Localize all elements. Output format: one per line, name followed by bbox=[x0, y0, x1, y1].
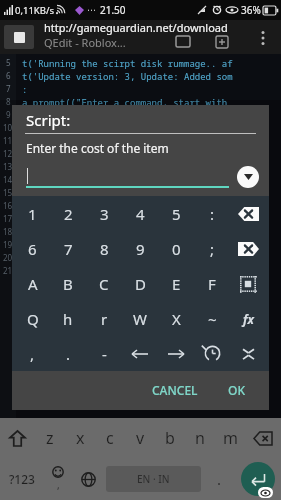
staticText: EN · IN bbox=[137, 472, 170, 486]
button[interactable]: fx bbox=[230, 301, 266, 336]
button[interactable]: 8 bbox=[86, 231, 122, 266]
staticText: 20 bbox=[3, 252, 13, 263]
button[interactable]: D bbox=[122, 266, 158, 301]
button[interactable]: 3 bbox=[86, 196, 122, 231]
button[interactable]: ; bbox=[194, 231, 230, 266]
button[interactable]: 0 bbox=[158, 231, 194, 266]
staticText: 21 bbox=[3, 265, 13, 276]
button[interactable]: 5 bbox=[158, 196, 194, 231]
staticText: C bbox=[99, 274, 109, 294]
staticText: W bbox=[133, 309, 147, 329]
button[interactable]: Change language bbox=[73, 458, 103, 500]
staticText: F bbox=[208, 274, 216, 294]
staticText: 2 bbox=[64, 204, 73, 224]
button[interactable]: New tab bbox=[212, 32, 232, 52]
staticText: z bbox=[46, 427, 54, 449]
button[interactable]: 2 bbox=[50, 196, 86, 231]
button[interactable]: C bbox=[86, 266, 122, 301]
button[interactable]: bs1 bbox=[230, 196, 266, 231]
staticText: , bbox=[57, 478, 60, 492]
button[interactable]: hist bbox=[194, 336, 230, 371]
button[interactable]: h bbox=[50, 301, 86, 336]
staticText: A bbox=[28, 274, 38, 294]
staticText: B bbox=[63, 274, 73, 294]
button[interactable]: m bbox=[215, 418, 245, 458]
button[interactable]: 4 bbox=[122, 196, 158, 231]
staticText: , bbox=[30, 344, 35, 364]
staticText: t('Update version: 3, Update: Added som bbox=[22, 70, 233, 82]
staticText: n bbox=[195, 427, 205, 449]
staticText: : bbox=[210, 204, 215, 224]
button[interactable]: n bbox=[185, 418, 215, 458]
button[interactable]: Q bbox=[15, 301, 50, 336]
button[interactable]: Delete bbox=[245, 418, 281, 458]
button[interactable]: bs2 bbox=[230, 231, 266, 266]
button[interactable]: 1 bbox=[15, 196, 50, 231]
staticText: ; bbox=[210, 239, 215, 259]
button[interactable]: left bbox=[122, 336, 158, 371]
button[interactable]: F bbox=[194, 266, 230, 301]
button[interactable]: v bbox=[125, 418, 155, 458]
staticText: Enter the cost of the item bbox=[26, 140, 169, 156]
button[interactable]: More options bbox=[252, 27, 274, 49]
button[interactable]: 7 bbox=[50, 231, 86, 266]
staticText: 17 bbox=[3, 213, 13, 224]
staticText: 9 bbox=[136, 239, 145, 259]
staticText: ~ bbox=[208, 309, 217, 329]
staticText: D bbox=[135, 274, 146, 294]
staticText: 7 bbox=[64, 239, 73, 259]
button[interactable]: Enter bbox=[241, 462, 275, 496]
button[interactable]: E bbox=[158, 266, 194, 301]
button[interactable]: Emoji bbox=[43, 458, 73, 500]
staticText: 3 bbox=[100, 204, 109, 224]
button[interactable]: B bbox=[50, 266, 86, 301]
button[interactable]: 9 bbox=[122, 231, 158, 266]
button[interactable]: - bbox=[86, 336, 122, 371]
staticText: 15 bbox=[3, 187, 13, 198]
button[interactable]: EN · IN bbox=[106, 466, 201, 492]
button[interactable]: right bbox=[158, 336, 194, 371]
staticText: v bbox=[136, 427, 145, 449]
button[interactable]: Tabs bbox=[4, 25, 34, 49]
button[interactable]: Shift bbox=[0, 418, 35, 458]
staticText: 4 bbox=[136, 204, 145, 224]
button[interactable]: x bbox=[65, 418, 95, 458]
button[interactable]: ?123 bbox=[0, 458, 43, 500]
button[interactable]: z bbox=[35, 418, 65, 458]
button[interactable]: Dropdown bbox=[237, 166, 259, 188]
button[interactable]: , bbox=[15, 336, 50, 371]
staticText: 19 bbox=[3, 239, 13, 250]
staticText: 16 bbox=[3, 200, 13, 211]
staticText: - bbox=[102, 344, 107, 364]
button[interactable]: r bbox=[86, 301, 122, 336]
button[interactable]: X bbox=[158, 301, 194, 336]
button[interactable]: grid bbox=[230, 266, 266, 301]
staticText: b bbox=[165, 427, 175, 449]
button[interactable]: 6 bbox=[15, 231, 50, 266]
staticText: t('Running the scirpt disk rummage.. af bbox=[22, 57, 233, 69]
staticText: . bbox=[66, 344, 71, 364]
button[interactable]: ~ bbox=[194, 301, 230, 336]
staticText: 13 bbox=[3, 161, 13, 172]
button[interactable]: c bbox=[95, 418, 125, 458]
staticText: 8 bbox=[6, 96, 11, 107]
staticText: : bbox=[22, 83, 28, 95]
staticText: 36% bbox=[241, 3, 261, 17]
staticText: 10 bbox=[3, 122, 13, 133]
button[interactable]: CANCEL bbox=[144, 378, 206, 402]
button[interactable]: W bbox=[122, 301, 158, 336]
staticText: 11 bbox=[3, 135, 13, 146]
button[interactable]: chev bbox=[230, 336, 266, 371]
staticText: 21.50 bbox=[100, 3, 126, 17]
button[interactable]: OK bbox=[220, 378, 253, 402]
button[interactable]: : bbox=[194, 196, 230, 231]
button[interactable]: Window bbox=[172, 33, 194, 49]
button[interactable]: b bbox=[155, 418, 185, 458]
staticText: http://gameguardian.net/download bbox=[44, 20, 228, 35]
button[interactable]: . bbox=[50, 336, 86, 371]
button[interactable]: A bbox=[15, 266, 50, 301]
staticText: 12 bbox=[3, 148, 13, 159]
staticText: r bbox=[101, 309, 108, 329]
staticText: 6 bbox=[28, 239, 37, 259]
